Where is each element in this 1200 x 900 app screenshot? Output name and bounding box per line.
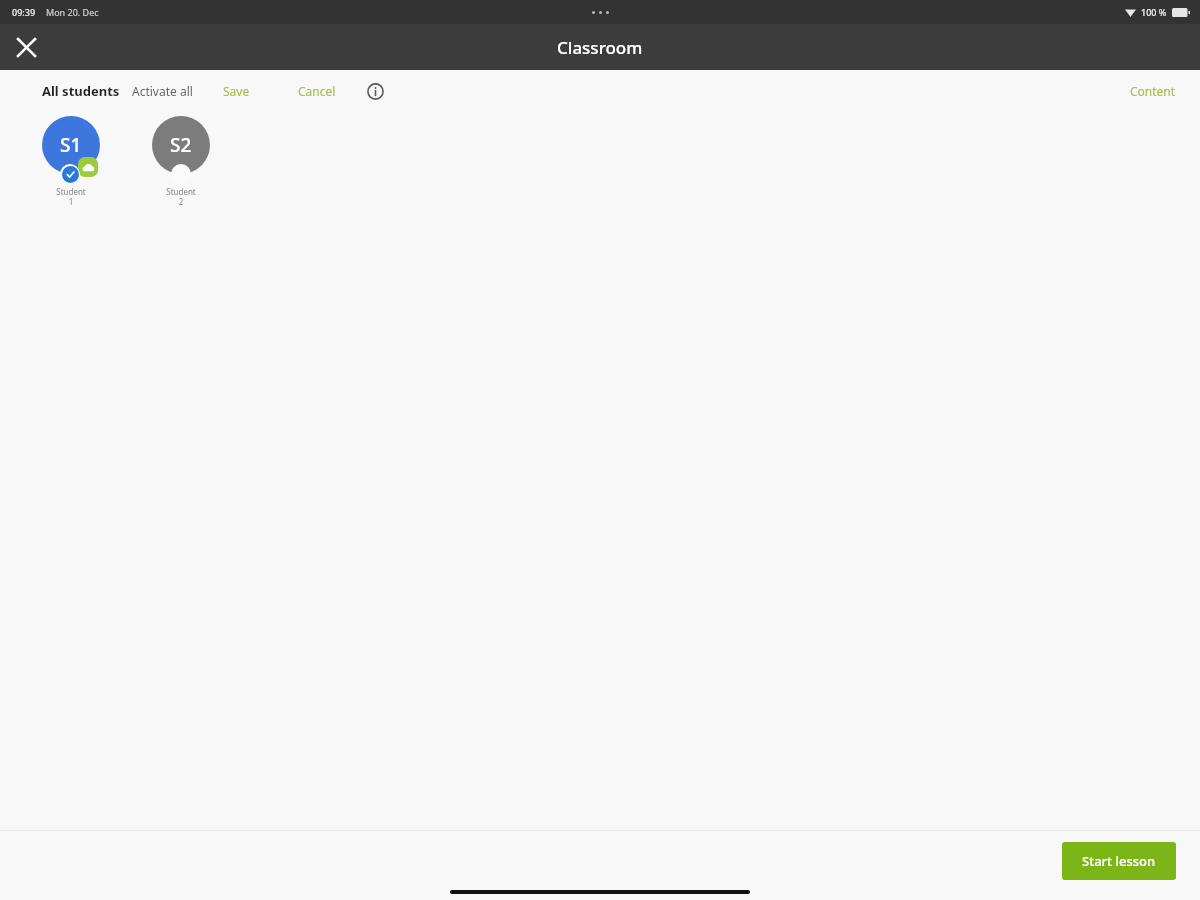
- button[interactable]: S2: [152, 116, 210, 207]
- staticText: 09:39: [12, 6, 36, 18]
- button[interactable]: Activate all: [132, 83, 193, 99]
- button[interactable]: Content: [1130, 83, 1176, 99]
- staticText: Classroom: [557, 36, 643, 59]
- button[interactable]: Close: [8, 29, 44, 65]
- staticText: Student 1: [56, 186, 86, 207]
- button[interactable]: Cancel: [298, 83, 336, 99]
- staticText: S2: [170, 132, 192, 158]
- button[interactable]: Start lesson: [1062, 842, 1176, 880]
- staticText: Mon 20. Dec: [46, 6, 99, 18]
- staticText: 100 %: [1141, 6, 1167, 18]
- button[interactable]: S1: [42, 116, 100, 207]
- button[interactable]: Information: [362, 78, 388, 104]
- staticText: Student 2: [166, 186, 196, 207]
- staticText: S1: [60, 132, 82, 158]
- button[interactable]: All students: [42, 82, 120, 100]
- button[interactable]: Save: [223, 83, 250, 99]
- staticText: Start lesson: [1082, 852, 1156, 870]
